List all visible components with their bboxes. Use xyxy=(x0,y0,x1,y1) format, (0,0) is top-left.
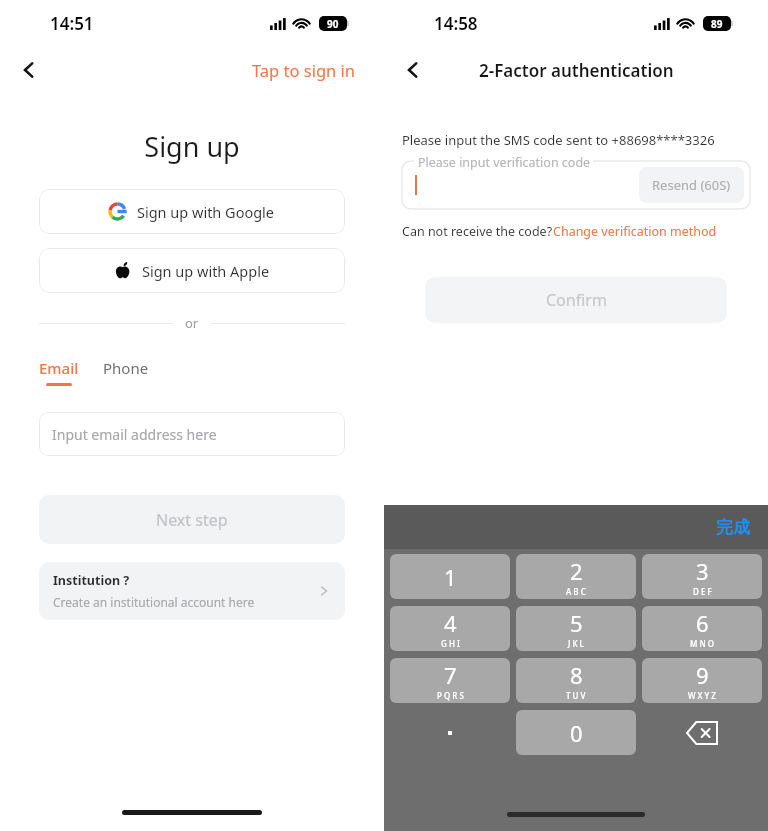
staticText: 0 xyxy=(570,718,583,748)
staticText: Resend (60S) xyxy=(652,176,731,194)
button[interactable]: Input email address here xyxy=(39,412,345,456)
staticText: Can not receive the code? xyxy=(402,223,553,240)
button[interactable]: Phone xyxy=(103,358,149,378)
staticText: Change verification method xyxy=(553,223,717,240)
staticText: 2 xyxy=(570,556,583,586)
staticText: J K L xyxy=(568,638,584,649)
staticText: 14:58 xyxy=(434,12,478,35)
button[interactable]: 8 xyxy=(516,658,636,703)
button[interactable]: Sign up with Apple xyxy=(39,248,345,293)
button[interactable]: 0 xyxy=(516,710,636,755)
staticText: P Q R S xyxy=(437,690,464,701)
staticText: 1 xyxy=(444,562,457,592)
button[interactable]: 6 xyxy=(642,606,762,651)
staticText: 4 xyxy=(444,608,457,638)
staticText: Sign up with Google xyxy=(137,202,275,222)
staticText: Sign up xyxy=(0,128,384,165)
staticText: 89 xyxy=(711,17,723,31)
staticText: Phone xyxy=(103,358,149,378)
staticText: T U V xyxy=(566,690,586,701)
staticText: D E F xyxy=(693,586,712,597)
staticText: Please input verification code xyxy=(418,154,591,171)
button[interactable]: 2 xyxy=(516,554,636,599)
button[interactable]: 5 xyxy=(516,606,636,651)
button[interactable]: 1 xyxy=(390,554,510,599)
staticText: or xyxy=(185,314,199,332)
button[interactable]: Sign up with Google xyxy=(39,189,345,234)
staticText: Tap to sign in xyxy=(252,59,356,81)
staticText: 5 xyxy=(570,608,583,638)
button[interactable]: Institution ? xyxy=(39,562,345,620)
button[interactable]: Change verification method xyxy=(553,223,717,240)
staticText: G H I xyxy=(441,638,460,649)
staticText: 3 xyxy=(696,556,709,586)
staticText: 完成 xyxy=(716,517,750,538)
button[interactable]: Confirm xyxy=(425,277,727,323)
staticText: 2-Factor authentication xyxy=(479,59,674,82)
button[interactable]: Delete xyxy=(642,710,762,755)
staticText: Confirm xyxy=(546,289,607,311)
staticText: 6 xyxy=(696,608,709,638)
button[interactable]: 9 xyxy=(642,658,762,703)
button[interactable]: 4 xyxy=(390,606,510,651)
button[interactable]: Next step xyxy=(39,495,345,544)
button[interactable]: Email xyxy=(39,358,79,386)
staticText: 14:51 xyxy=(50,12,94,35)
staticText: 7 xyxy=(444,660,457,690)
staticText: Sign up with Apple xyxy=(142,261,270,281)
staticText: Next step xyxy=(156,509,228,531)
staticText: Institution ? xyxy=(53,572,130,589)
staticText: Email xyxy=(39,358,79,378)
staticText: Input email address here xyxy=(52,425,217,444)
button[interactable]: Back xyxy=(8,49,50,91)
button[interactable]: 7 xyxy=(390,658,510,703)
button[interactable]: Resend (60S) xyxy=(639,167,744,203)
button[interactable]: Back xyxy=(392,49,434,91)
button[interactable]: 3 xyxy=(642,554,762,599)
button[interactable] xyxy=(390,710,510,755)
staticText: Please input the SMS code sent to +88698… xyxy=(402,131,715,149)
staticText: W X Y Z xyxy=(688,690,716,701)
button[interactable]: 完成 xyxy=(712,513,754,542)
staticText: A B C xyxy=(566,586,586,597)
staticText: Create an institutional account here xyxy=(53,594,255,610)
staticText: 8 xyxy=(570,660,583,690)
staticText: 90 xyxy=(327,17,339,31)
staticText: M N O xyxy=(690,638,714,649)
staticText: 9 xyxy=(696,660,709,690)
button[interactable]: Tap to sign in xyxy=(248,53,360,87)
